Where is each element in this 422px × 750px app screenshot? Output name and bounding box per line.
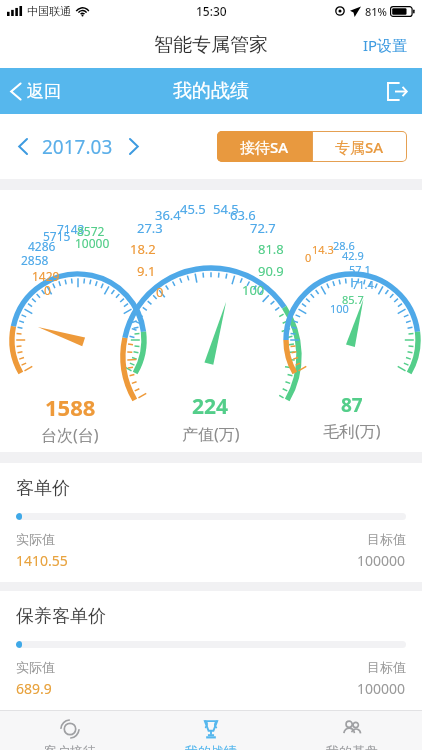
staticText: 8572 [77, 223, 105, 239]
staticText: 产值(万) [182, 423, 240, 445]
staticText: 我的战绩 [185, 743, 237, 750]
staticText: 15:30 [196, 3, 227, 19]
staticText: 4286 [28, 238, 56, 254]
staticText: 72.7 [250, 219, 276, 237]
staticText: 接待SA [240, 137, 289, 157]
staticText: 专属SA [335, 137, 384, 157]
staticText: 2017.03 [42, 134, 113, 160]
staticText: 36.4 [155, 206, 181, 224]
staticText: 100 [242, 281, 265, 299]
button[interactable]: 保养客单价 [0, 591, 422, 710]
staticText: 0 [156, 283, 164, 301]
staticText: 中国联通 [27, 4, 71, 18]
staticText: 87 [341, 392, 363, 418]
staticText: 台次(台) [41, 424, 99, 446]
staticText: 42.9 [342, 248, 364, 263]
staticText: 保养客单价 [16, 605, 106, 628]
staticText: 目标值 [367, 659, 406, 675]
staticText: 目标值 [367, 531, 406, 547]
button[interactable]: 退出 [373, 71, 422, 112]
staticText: 100 [330, 301, 349, 316]
staticText: 毛利(万) [323, 420, 381, 442]
staticText: 我的战绩 [173, 79, 249, 103]
staticText: 实际值 [16, 531, 55, 547]
staticText: 689.9 [16, 679, 52, 698]
button[interactable]: 上个月 [11, 131, 35, 162]
button[interactable]: 客单价 [0, 463, 422, 582]
staticText: 5715 [43, 228, 71, 244]
staticText: 81.8 [258, 240, 284, 258]
button[interactable]: IP设置 [349, 26, 422, 64]
staticText: 45.5 [180, 200, 206, 218]
button[interactable]: 接待SA [217, 131, 312, 162]
staticText: 客单价 [16, 477, 70, 500]
staticText: 63.6 [230, 206, 256, 224]
staticText: 54.5 [213, 200, 239, 218]
button[interactable]: 专属SA [313, 132, 406, 161]
staticText: 18.2 [130, 240, 156, 258]
staticText: IP设置 [363, 35, 408, 55]
staticText: 27.3 [137, 219, 163, 237]
staticText: 我的基盘 [326, 743, 378, 750]
staticText: 28.6 [333, 238, 355, 253]
staticText: 智能专属管家 [154, 33, 268, 57]
staticText: 0 [44, 282, 51, 298]
staticText: 85.7 [342, 292, 364, 307]
staticText: 2858 [21, 252, 49, 268]
staticText: 0 [305, 250, 312, 265]
staticText: 71.4 [352, 277, 374, 292]
staticText: 1410.55 [16, 551, 68, 570]
staticText: 90.9 [258, 262, 284, 280]
staticText: 实际值 [16, 659, 55, 675]
button[interactable]: 客户接待 [0, 711, 140, 750]
staticText: 7143 [57, 221, 85, 237]
button[interactable]: 我的基盘 [281, 711, 422, 750]
staticText: 10000 [75, 235, 110, 251]
button[interactable]: 我的战绩 [140, 711, 281, 750]
staticText: 1429 [32, 268, 60, 284]
staticText: 100000 [357, 679, 406, 698]
button[interactable]: 下个月 [122, 131, 146, 162]
staticText: 返回 [27, 81, 61, 102]
staticText: 57.1 [349, 262, 371, 277]
staticText: 224 [192, 392, 229, 421]
staticText: 14.3 [312, 242, 334, 257]
staticText: 100000 [357, 551, 406, 570]
staticText: 9.1 [137, 262, 156, 280]
staticText: 1588 [45, 392, 96, 422]
button[interactable]: 返回 [0, 74, 73, 109]
staticText: 客户接待 [44, 743, 96, 750]
staticText: 81% [365, 4, 387, 19]
